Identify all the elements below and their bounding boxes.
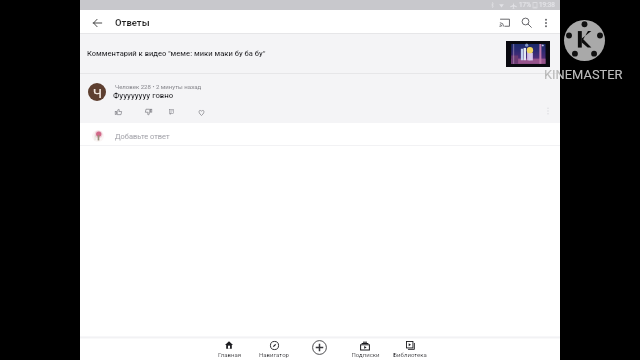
button[interactable]: Channel avatar (88, 83, 106, 101)
staticText: Подписки (351, 351, 380, 358)
button[interactable]: Подписки (343, 337, 387, 360)
button[interactable]: Search (516, 12, 537, 33)
staticText: KINEMASTER (544, 67, 623, 82)
button[interactable]: Навигатор (252, 337, 296, 360)
button[interactable]: Create (312, 340, 327, 355)
staticText: 17% (519, 1, 531, 9)
staticText: Ответы (115, 17, 150, 28)
staticText: Навигатор (259, 351, 289, 358)
staticText: Библиотека (393, 351, 427, 358)
staticText: Комментарий к видео "меме: мики маки бу … (87, 49, 266, 58)
button[interactable] (80, 123, 560, 145)
button[interactable]: More options (535, 12, 556, 33)
staticText: Ч (93, 86, 102, 101)
staticText: Главная (218, 351, 241, 358)
button[interactable]: Cast (494, 12, 515, 33)
button[interactable]: Like (112, 106, 124, 118)
button[interactable]: Reply (165, 106, 177, 118)
staticText: Фуууууууу говно (113, 91, 174, 100)
staticText: Добавьте ответ (115, 132, 170, 141)
button[interactable]: Favourite (195, 106, 207, 118)
button[interactable]: Dislike (142, 106, 154, 118)
button[interactable]: Библиотека (388, 337, 432, 360)
staticText: 19:38 (539, 1, 555, 9)
button[interactable]: Главная (207, 337, 251, 360)
staticText: Человек 228 • 2 минуты назад (115, 83, 202, 90)
button[interactable]: Back (88, 13, 107, 32)
